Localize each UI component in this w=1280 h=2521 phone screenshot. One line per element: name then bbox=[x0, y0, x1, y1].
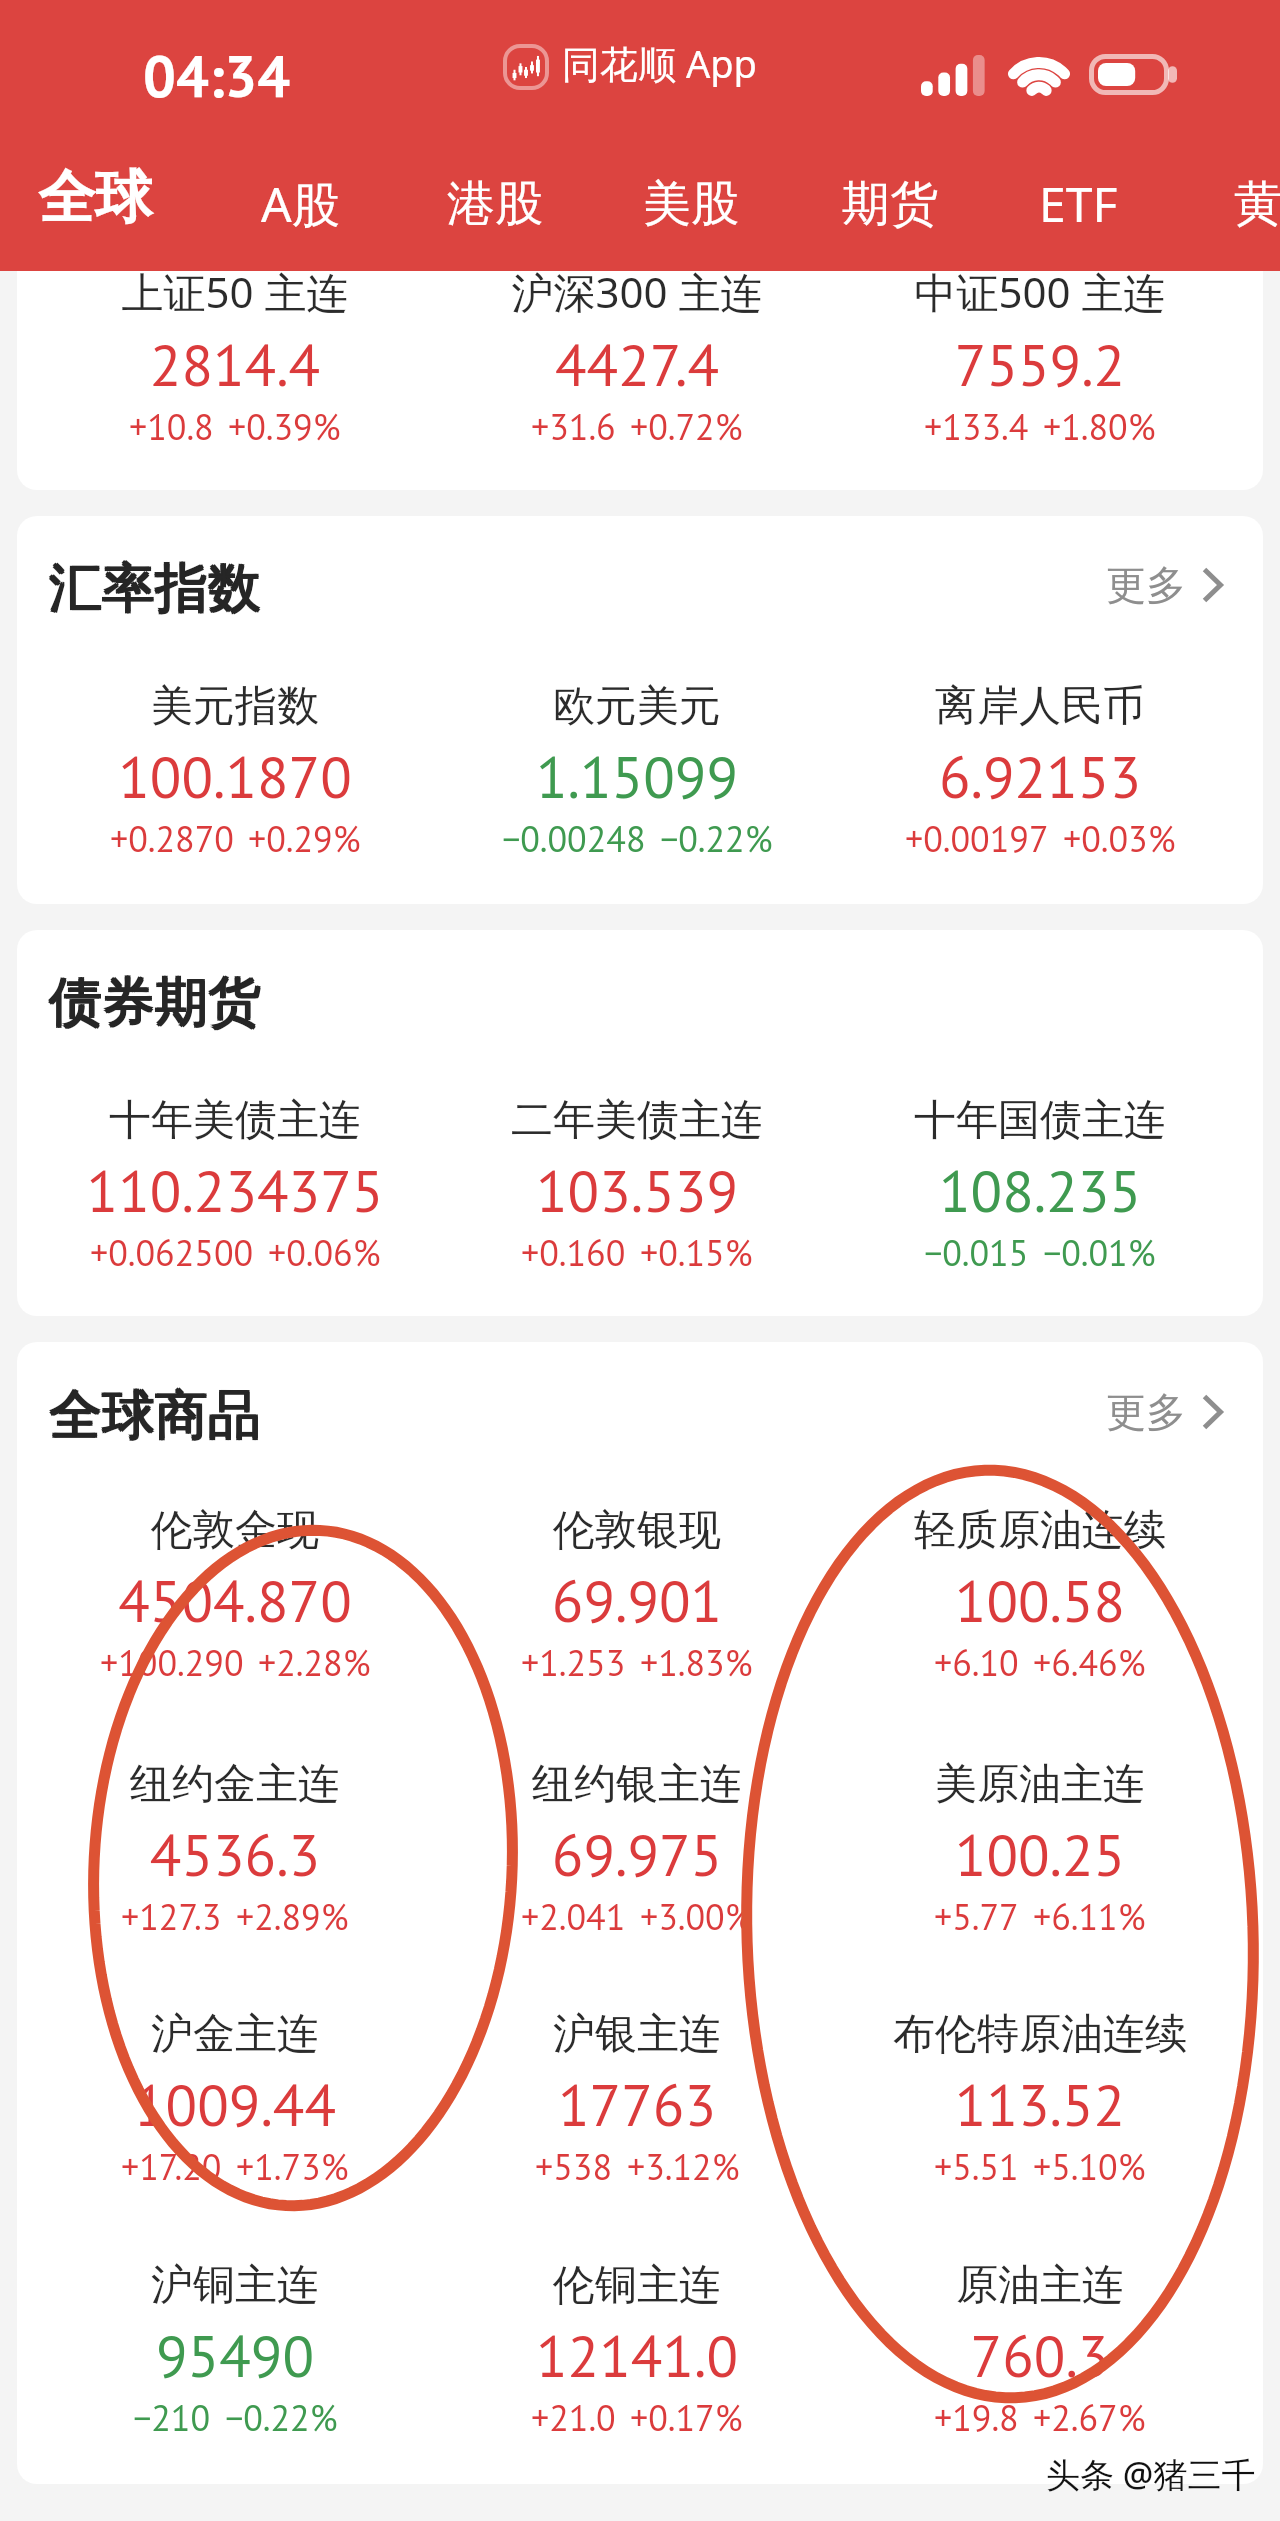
staticText: +0.03% bbox=[1063, 815, 1176, 862]
button[interactable]: 上证50 主连 bbox=[35, 263, 435, 451]
staticText: 更多 bbox=[1106, 1387, 1186, 1437]
staticText: ETF bbox=[1039, 171, 1118, 236]
staticText: 港股 bbox=[447, 174, 543, 234]
staticText: +31.6 bbox=[531, 403, 616, 450]
staticText: 4427.4 bbox=[437, 327, 837, 402]
staticText: +538 bbox=[535, 2143, 613, 2190]
staticText: +10.8 bbox=[129, 403, 214, 450]
staticText: 17763 bbox=[437, 2067, 837, 2142]
staticText: 沪深300 主连 bbox=[437, 263, 837, 320]
staticText: 纽约金主连 bbox=[35, 1758, 435, 1811]
staticText: 期货 bbox=[842, 174, 938, 234]
staticText: 760.3 bbox=[840, 2318, 1240, 2393]
staticText: +0.00197 bbox=[905, 815, 1049, 862]
staticText: 全球商品 bbox=[48, 1381, 260, 1448]
button[interactable]: 十年美债主连 bbox=[35, 1094, 435, 1282]
button[interactable]: 沪铜主连 bbox=[35, 2259, 435, 2447]
staticText: 103.539 bbox=[437, 1153, 837, 1228]
staticText: 全球商品 bbox=[48, 1383, 260, 1450]
staticText: +6.46% bbox=[1033, 1639, 1146, 1686]
button[interactable]: 十年国债主连 bbox=[840, 1094, 1240, 1282]
other: 更多 bbox=[1202, 567, 1223, 603]
button[interactable]: 纽约银主连 bbox=[437, 1758, 837, 1946]
staticText: +6.11% bbox=[1033, 1893, 1146, 1940]
button[interactable]: ETF bbox=[1017, 159, 1140, 248]
button[interactable]: 沪金主连 bbox=[35, 2008, 435, 2196]
staticText: A股 bbox=[261, 171, 340, 237]
button[interactable]: 纽约金主连 bbox=[35, 1758, 435, 1946]
staticText: 二年美债主连 bbox=[437, 1094, 837, 1147]
staticText: 1.15099 bbox=[437, 739, 837, 814]
staticText: +127.3 bbox=[121, 1893, 222, 1940]
staticText: 美元指数 bbox=[35, 680, 435, 733]
button[interactable]: 更多 bbox=[1106, 1387, 1280, 1437]
button[interactable]: 二年美债主连 bbox=[437, 1094, 837, 1282]
staticText: +1.73% bbox=[236, 2143, 349, 2190]
button[interactable]: 债券期货 bbox=[0, 968, 260, 1035]
staticText: +17.20 bbox=[121, 2143, 222, 2190]
staticText: 美原油主连 bbox=[840, 1758, 1240, 1811]
button[interactable]: 全球商品 bbox=[0, 1381, 260, 1448]
button[interactable]: 中证500 主连 bbox=[840, 263, 1240, 451]
staticText: 沪银主连 bbox=[437, 2008, 837, 2061]
staticText: 债券期货 bbox=[48, 970, 260, 1037]
button[interactable]: 离岸人民币 bbox=[840, 680, 1240, 868]
staticText: 沪铜主连 bbox=[35, 2259, 435, 2312]
button[interactable]: 欧元美元 bbox=[437, 680, 837, 868]
staticText: 04:34 bbox=[143, 38, 291, 113]
staticText: −210 bbox=[133, 2394, 211, 2441]
staticText: 12141.0 bbox=[437, 2318, 837, 2393]
staticText: +0.062500 bbox=[90, 1229, 254, 1276]
staticText: +0.15% bbox=[640, 1229, 753, 1276]
button[interactable]: 期货 bbox=[820, 162, 960, 246]
staticText: −0.22% bbox=[225, 2394, 338, 2441]
staticText: 汇率指数 bbox=[50, 556, 262, 623]
button[interactable]: 原油主连 bbox=[840, 2259, 1240, 2447]
button[interactable]: 伦敦金现 bbox=[35, 1504, 435, 1692]
staticText: +0.160 bbox=[521, 1229, 626, 1276]
staticText: 全球商品 bbox=[50, 1383, 262, 1450]
staticText: 黄 bbox=[1234, 174, 1280, 234]
button[interactable]: 布伦特原油连续 bbox=[840, 2008, 1240, 2196]
button[interactable]: 港股 bbox=[425, 162, 565, 246]
staticText: +5.51 bbox=[934, 2143, 1019, 2190]
staticText: 债券期货 bbox=[50, 968, 262, 1035]
staticText: −0.015 bbox=[924, 1229, 1029, 1276]
staticText: 十年国债主连 bbox=[840, 1094, 1240, 1147]
staticText: +2.89% bbox=[236, 1893, 349, 1940]
button[interactable]: 美股 bbox=[621, 162, 761, 246]
staticText: 100.25 bbox=[840, 1817, 1240, 1892]
button[interactable]: 沪银主连 bbox=[437, 2008, 837, 2196]
staticText: +100.290 bbox=[100, 1639, 244, 1686]
button[interactable]: 美元指数 bbox=[35, 680, 435, 868]
button[interactable]: 轻质原油连续 bbox=[840, 1504, 1240, 1692]
button[interactable]: 美原油主连 bbox=[840, 1758, 1240, 1946]
staticText: +0.06% bbox=[268, 1229, 381, 1276]
staticText: 69.901 bbox=[437, 1563, 837, 1638]
staticText: 纽约银主连 bbox=[437, 1758, 837, 1811]
button[interactable]: 伦铜主连 bbox=[437, 2259, 837, 2447]
staticText: 108.235 bbox=[840, 1153, 1240, 1228]
button[interactable]: 汇率指数 bbox=[0, 554, 260, 621]
button[interactable]: 黄 bbox=[1212, 162, 1280, 246]
button[interactable]: 全球 bbox=[16, 152, 174, 244]
button[interactable]: 更多 bbox=[1106, 560, 1280, 610]
staticText: 100.58 bbox=[840, 1563, 1240, 1638]
staticText: +0.17% bbox=[630, 2394, 743, 2441]
staticText: +0.72% bbox=[630, 403, 743, 450]
staticText: +21.0 bbox=[531, 2394, 616, 2441]
staticText: 113.52 bbox=[840, 2067, 1240, 2142]
staticText: 汇率指数 bbox=[48, 554, 260, 621]
staticText: 头条 @猪三千 bbox=[1046, 2451, 1256, 2497]
button[interactable]: 伦敦银现 bbox=[437, 1504, 837, 1692]
staticText: 全球 bbox=[38, 162, 152, 234]
button[interactable]: A股 bbox=[239, 159, 362, 249]
staticText: 欧元美元 bbox=[437, 680, 837, 733]
staticText: +2.041 bbox=[521, 1893, 626, 1940]
button[interactable]: 沪深300 主连 bbox=[437, 263, 837, 451]
staticText: +2.67% bbox=[1033, 2394, 1146, 2441]
staticText: 2814.4 bbox=[35, 327, 435, 402]
staticText: +0.29% bbox=[248, 815, 361, 862]
staticText: 债券期货 bbox=[48, 968, 260, 1035]
staticText: −0.01% bbox=[1043, 1229, 1156, 1276]
